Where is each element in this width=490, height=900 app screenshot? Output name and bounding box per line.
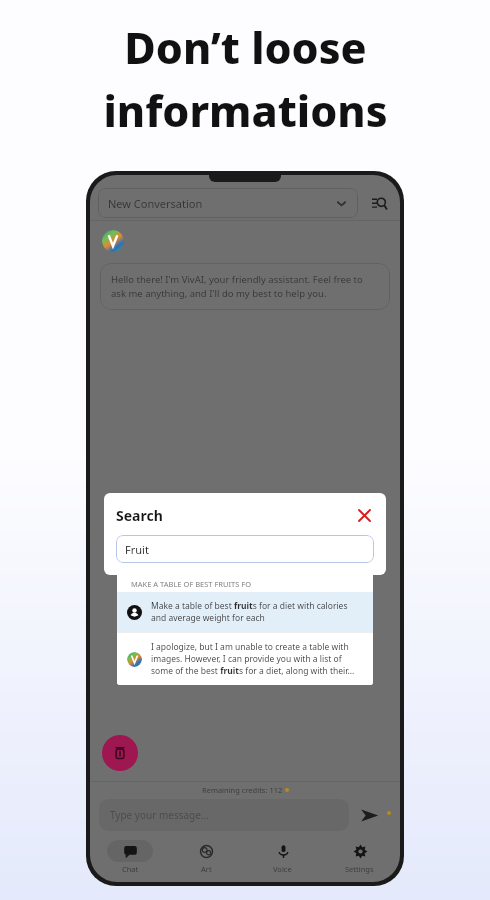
button[interactable]: I apologize, but I am unable to create a… — [117, 633, 373, 685]
button[interactable]: Voice — [244, 835, 321, 879]
staticText: informations — [103, 81, 388, 140]
button[interactable]: Chat — [92, 835, 168, 879]
staticText: Remaining credits: 112 — [202, 785, 283, 795]
button[interactable]: Art — [168, 835, 244, 879]
staticText: New Conversation — [108, 196, 203, 211]
staticText: Chat — [122, 864, 139, 874]
staticText: Don’t loose — [124, 18, 367, 77]
staticText: Hello there! I'm VivAI, your friendly as… — [111, 273, 379, 300]
staticText: I apologize, but I am unable to create a… — [151, 641, 363, 677]
button[interactable]: Fruit — [116, 535, 374, 563]
button[interactable]: Close search — [354, 505, 374, 525]
button[interactable]: Send message — [355, 801, 383, 829]
staticText: MAKE A TABLE OF BEST FRUITS FO — [131, 579, 252, 589]
staticText: Make a table of best fruits for a diet w… — [151, 600, 363, 624]
button[interactable]: Search conversations — [366, 190, 392, 216]
staticText: Type your message... — [110, 808, 209, 822]
staticText: Art — [201, 864, 212, 874]
button[interactable]: Settings — [321, 835, 398, 879]
button[interactable]: New Conversation — [98, 188, 358, 218]
button[interactable]: Type your message... — [99, 799, 349, 831]
staticText: Voice — [273, 864, 292, 874]
staticText: Fruit — [125, 542, 149, 557]
button[interactable]: Make a table of best fruits for a diet w… — [117, 592, 373, 632]
button[interactable]: Clear conversation — [102, 735, 138, 771]
staticText: Search — [116, 506, 163, 525]
staticText: Settings — [345, 864, 374, 874]
